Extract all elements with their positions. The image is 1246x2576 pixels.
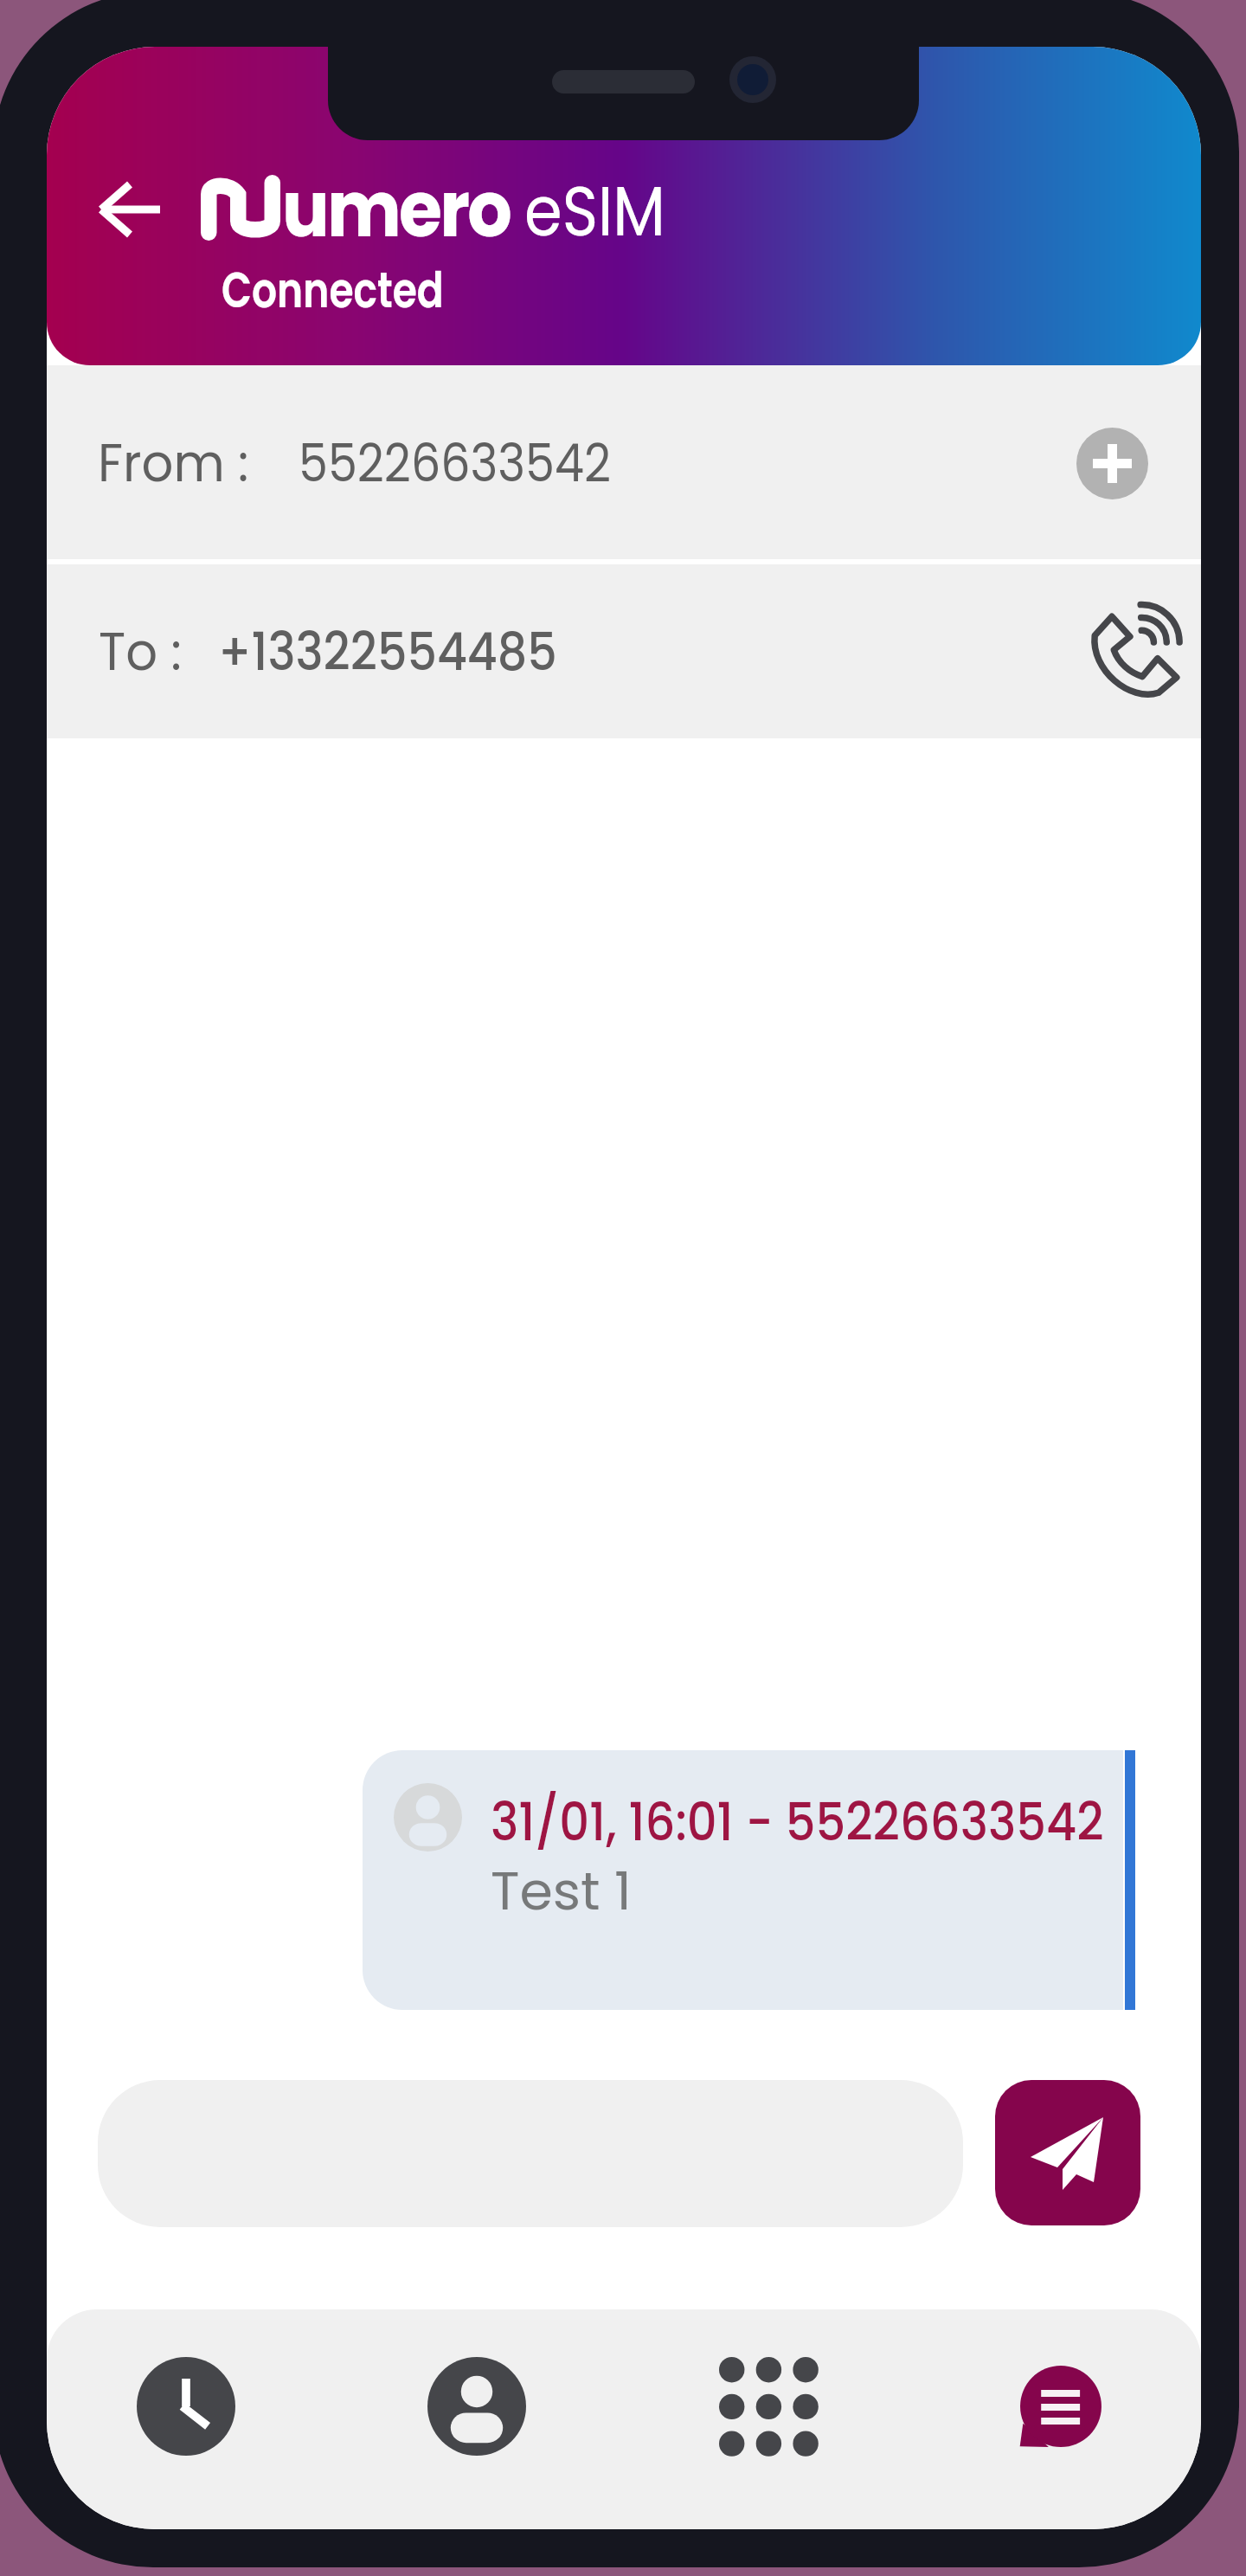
staticText: 55226633542 — [299, 427, 612, 499]
staticText: umero — [282, 155, 510, 264]
staticText: +13322554485 — [218, 615, 558, 688]
staticText: To : — [99, 615, 182, 688]
button[interactable]: Call — [1083, 604, 1179, 699]
button[interactable]: 31/01, 16:01 - 55226633542 — [363, 1750, 1123, 2010]
staticText: 31/01, 16:01 - 55226633542 — [491, 1786, 1104, 1858]
staticText: Connected — [222, 255, 444, 325]
button[interactable]: Dial pad — [703, 2341, 833, 2471]
button[interactable]: Recent calls — [121, 2341, 251, 2471]
staticText: Test 1 — [491, 1855, 632, 1928]
button[interactable]: Back — [84, 166, 170, 253]
button[interactable]: Messages — [996, 2341, 1126, 2471]
button[interactable]: To : — [47, 564, 1201, 738]
button[interactable]: Add contact — [1076, 428, 1148, 499]
staticText: From : — [98, 427, 249, 499]
button[interactable]: From : — [47, 365, 1201, 561]
button[interactable]: Send — [995, 2080, 1140, 2225]
button[interactable]: Contacts — [412, 2341, 542, 2471]
staticText: eSIM — [524, 163, 666, 260]
